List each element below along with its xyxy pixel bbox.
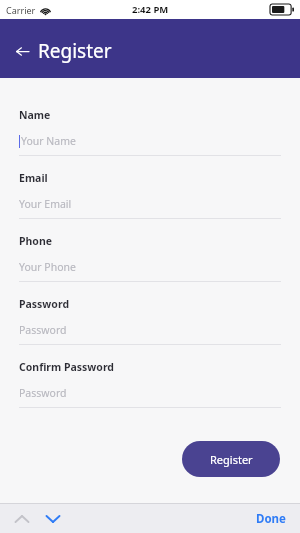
- button[interactable]: Previous field: [9, 506, 35, 532]
- button[interactable]: Confirm Password: [0, 360, 300, 423]
- staticText: Register: [210, 452, 253, 467]
- staticText: Your Phone: [19, 260, 76, 274]
- staticText: Your Name: [21, 134, 76, 148]
- staticText: Password: [19, 323, 67, 337]
- staticText: Confirm Password: [19, 360, 115, 374]
- button[interactable]: Back: [11, 40, 33, 62]
- staticText: Password: [19, 386, 67, 400]
- staticText: Email: [19, 171, 48, 185]
- button[interactable]: Email: [0, 171, 300, 234]
- button[interactable]: Next field: [40, 506, 66, 532]
- button[interactable]: Register: [182, 441, 280, 477]
- button[interactable]: Name: [0, 108, 300, 171]
- staticText: Password: [19, 297, 70, 311]
- staticText: Phone: [19, 234, 53, 248]
- staticText: Register: [38, 38, 112, 64]
- staticText: Carrier: [6, 4, 36, 16]
- button[interactable]: Done: [242, 507, 300, 531]
- staticText: 2:42 PM: [132, 3, 169, 16]
- button[interactable]: Password: [0, 297, 300, 360]
- staticText: Done: [256, 511, 286, 527]
- staticText: Name: [19, 108, 51, 122]
- button[interactable]: Phone: [0, 234, 300, 297]
- staticText: Your Email: [19, 197, 72, 211]
